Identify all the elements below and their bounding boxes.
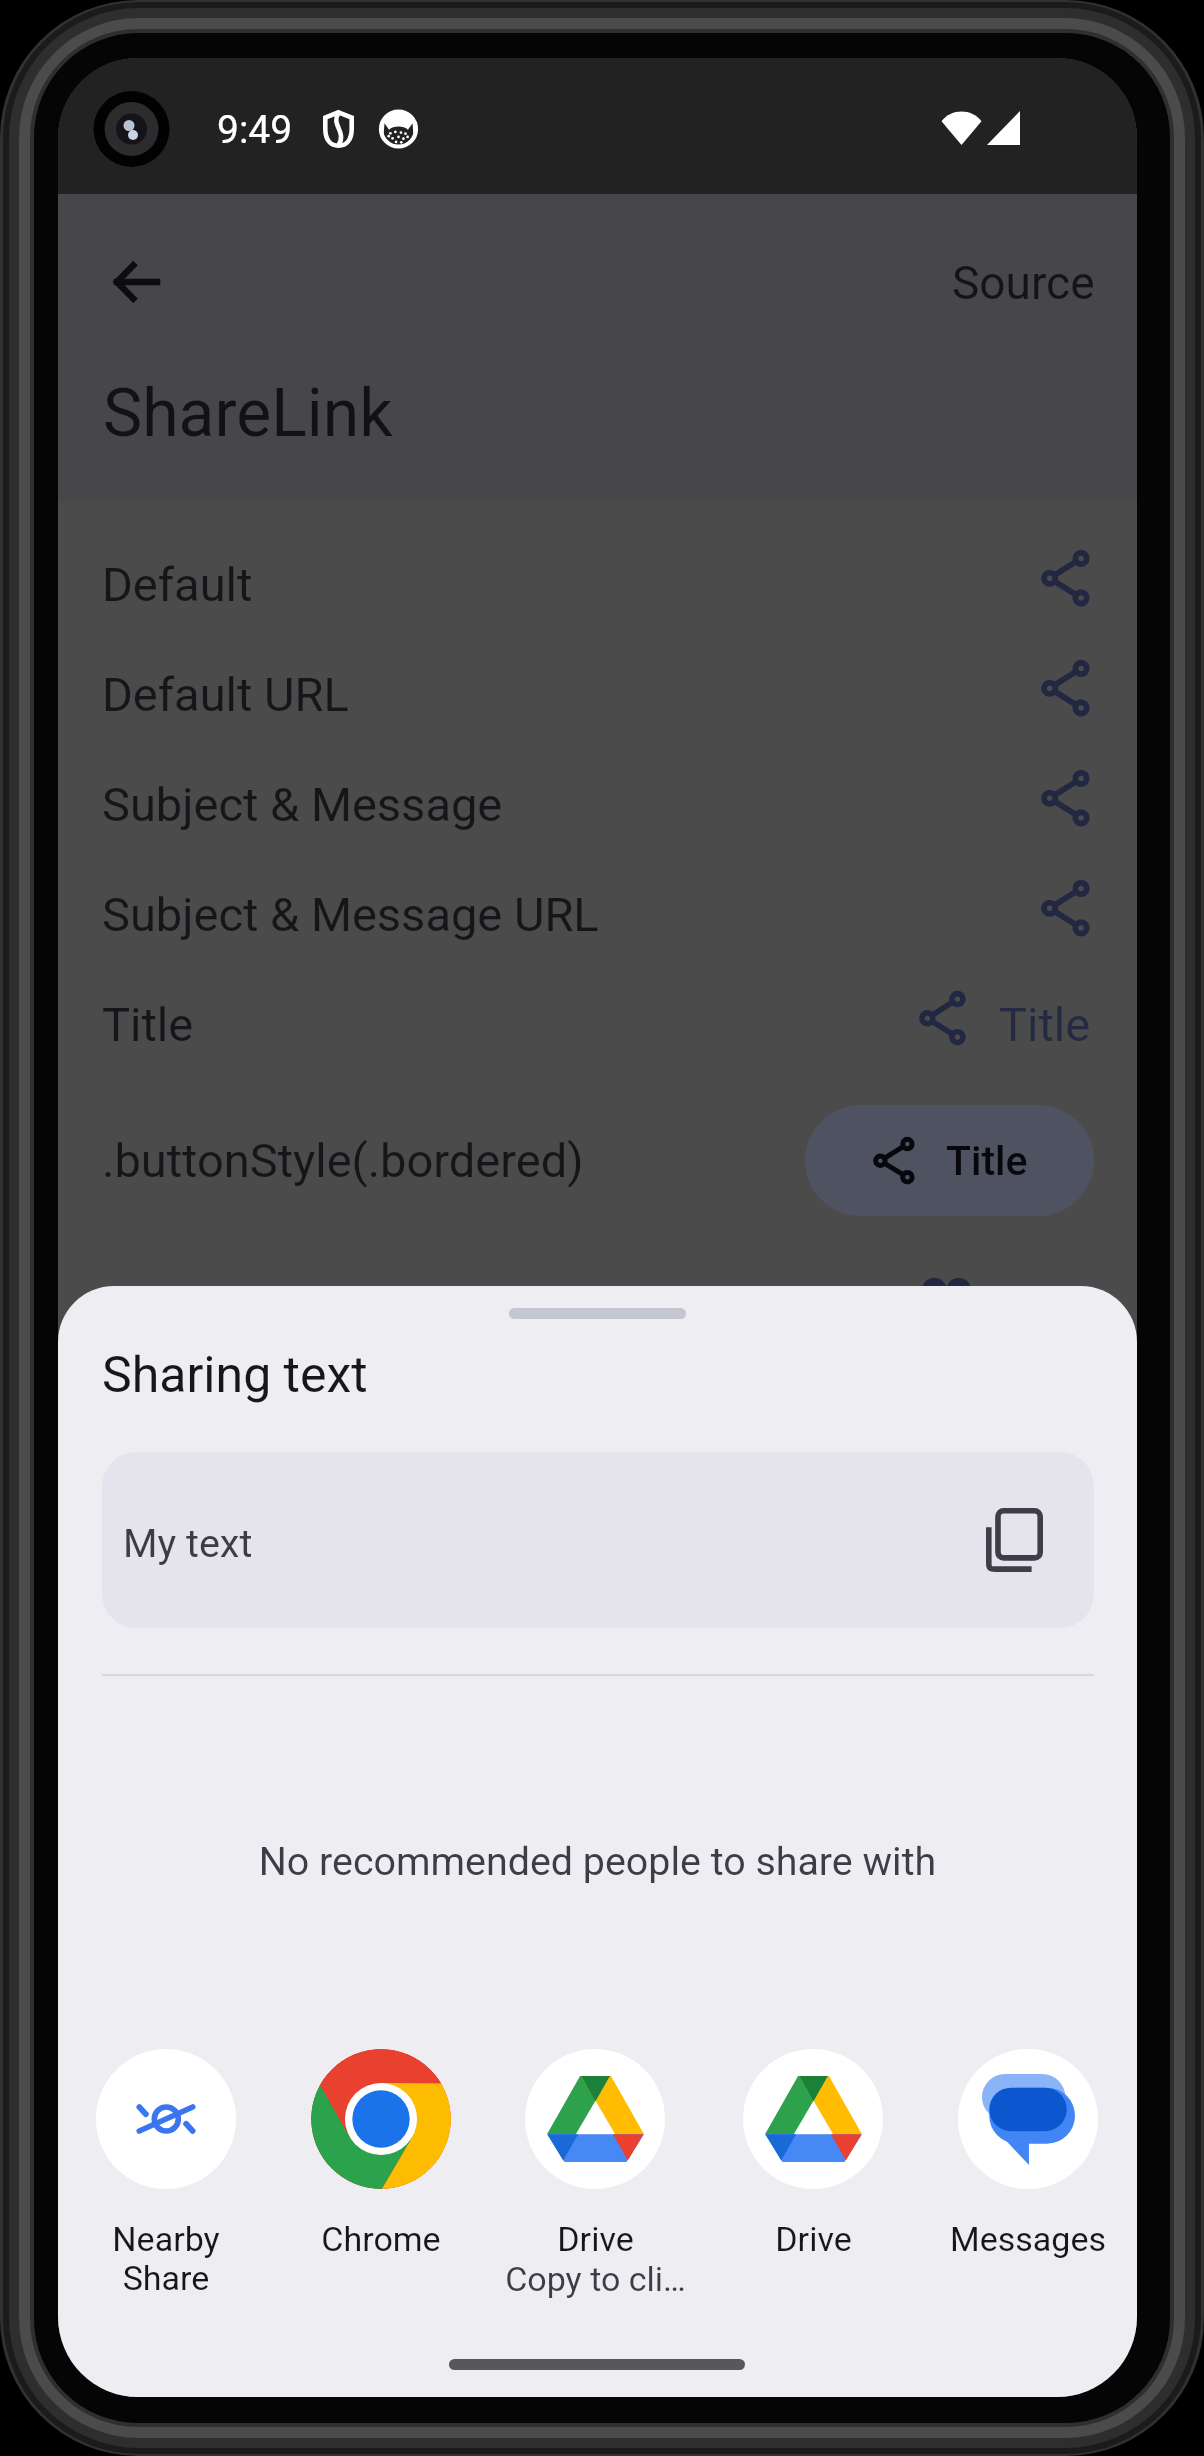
staticText: 9:49 bbox=[217, 107, 293, 153]
staticText: Drive bbox=[775, 2219, 852, 2259]
staticText: Subject & Message URL bbox=[102, 887, 599, 942]
staticText: .buttonStyle(.bordered) bbox=[102, 1133, 584, 1188]
staticText: My text bbox=[123, 1520, 253, 1566]
staticText: Nearby Share bbox=[112, 2219, 220, 2298]
staticText: Sharing text bbox=[102, 1346, 368, 1405]
staticText: Title bbox=[102, 997, 194, 1052]
button[interactable]: Subject & Message bbox=[58, 749, 1137, 859]
staticText: Source bbox=[952, 256, 1095, 310]
button[interactable]: Source bbox=[938, 247, 1109, 319]
staticText: ShareLink bbox=[103, 375, 393, 452]
button[interactable]: Title bbox=[805, 1105, 1094, 1216]
button[interactable]: Chrome bbox=[274, 2041, 488, 2259]
button[interactable]: Subject & Message URL bbox=[58, 859, 1137, 969]
button[interactable]: Default URL bbox=[58, 639, 1137, 749]
button[interactable]: Default bbox=[58, 529, 1137, 639]
button[interactable]: Title bbox=[58, 969, 1137, 1079]
staticText: Drive bbox=[557, 2219, 634, 2259]
staticText: No recommended people to share with bbox=[58, 1838, 1137, 1884]
staticText: Title bbox=[999, 997, 1091, 1052]
button[interactable]: My text bbox=[102, 1452, 1094, 1628]
staticText: Messages bbox=[950, 2219, 1106, 2259]
button[interactable]: Drive bbox=[706, 2041, 920, 2259]
button[interactable]: Navigate up bbox=[87, 234, 183, 330]
staticText: Chrome bbox=[321, 2219, 441, 2259]
staticText: Subject & Message bbox=[102, 777, 503, 832]
button[interactable]: Nearby Share bbox=[59, 2041, 273, 2298]
staticText: Copy to cli… bbox=[505, 2259, 686, 2299]
staticText: Default URL bbox=[102, 667, 349, 722]
staticText: Title bbox=[946, 1137, 1028, 1185]
staticText: Default bbox=[102, 557, 253, 612]
button[interactable]: Messages bbox=[921, 2041, 1135, 2259]
button[interactable]: Drive bbox=[488, 2041, 702, 2299]
